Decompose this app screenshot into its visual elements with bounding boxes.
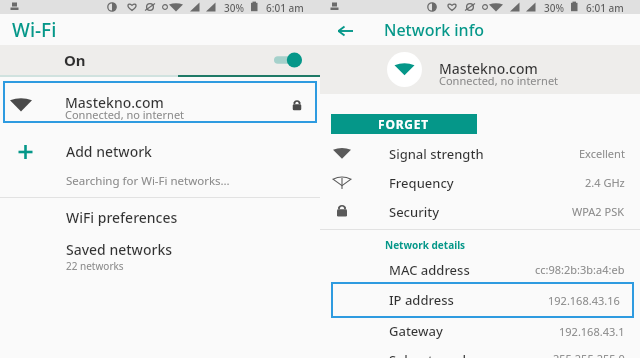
staticText: 22 networks <box>66 259 124 273</box>
staticText: Excellent <box>579 146 625 161</box>
button[interactable]: WiFi preferences <box>0 198 320 233</box>
staticText: Network info <box>384 19 485 41</box>
staticText: Mastekno.com <box>65 93 164 112</box>
button[interactable]: Signal strength <box>320 139 640 168</box>
button[interactable]: Wi-Fi <box>0 14 320 45</box>
staticText: MAC address <box>389 261 470 279</box>
button[interactable]: Subnet mask <box>320 351 640 358</box>
staticText: WiFi preferences <box>66 208 178 227</box>
button[interactable]: FORGET <box>331 114 477 134</box>
staticText: Saved networks <box>66 240 173 259</box>
button[interactable]: Saved networks <box>0 233 320 273</box>
button[interactable]: Security <box>320 197 640 226</box>
staticText: Network details <box>385 238 466 252</box>
button[interactable]: IP address <box>331 282 634 318</box>
staticText: Subnet mask <box>389 351 470 358</box>
staticText: Wi-Fi <box>12 17 57 43</box>
staticText: 30% <box>544 1 564 15</box>
staticText: Connected, no internet <box>439 73 559 88</box>
staticText: Mastekno.com <box>439 59 538 78</box>
button[interactable]: MAC address <box>320 257 640 282</box>
button[interactable]: Gateway <box>320 318 640 344</box>
staticText: FORGET <box>378 116 430 132</box>
staticText: Frequency <box>389 174 454 192</box>
staticText: Security <box>389 203 439 221</box>
staticText: Signal strength <box>389 145 484 163</box>
staticText: On <box>64 50 86 70</box>
staticText: IP address <box>389 291 454 309</box>
staticText: WPA2 PSK <box>572 204 625 219</box>
staticText: 255.255.255.0 <box>553 351 625 358</box>
button[interactable]: Back <box>334 18 358 42</box>
button[interactable]: Add network <box>0 137 320 165</box>
staticText: Searching for Wi-Fi networks… <box>66 173 230 189</box>
staticText: Add network <box>66 142 152 161</box>
staticText: Connected, no internet <box>65 107 185 122</box>
staticText: 30% <box>224 1 244 15</box>
staticText: 6:01 am <box>266 1 304 15</box>
staticText: 2.4 GHz <box>585 175 625 190</box>
staticText: cc:98:2b:3b:a4:eb <box>535 262 625 277</box>
staticText: 192.168.43.16 <box>548 293 620 308</box>
staticText: 192.168.43.1 <box>559 324 625 339</box>
button[interactable]: Mastekno.com <box>3 81 317 123</box>
staticText: Gateway <box>389 322 443 340</box>
staticText: 6:01 am <box>586 1 624 15</box>
button[interactable]: Frequency <box>320 168 640 197</box>
button[interactable]: On <box>0 45 320 75</box>
